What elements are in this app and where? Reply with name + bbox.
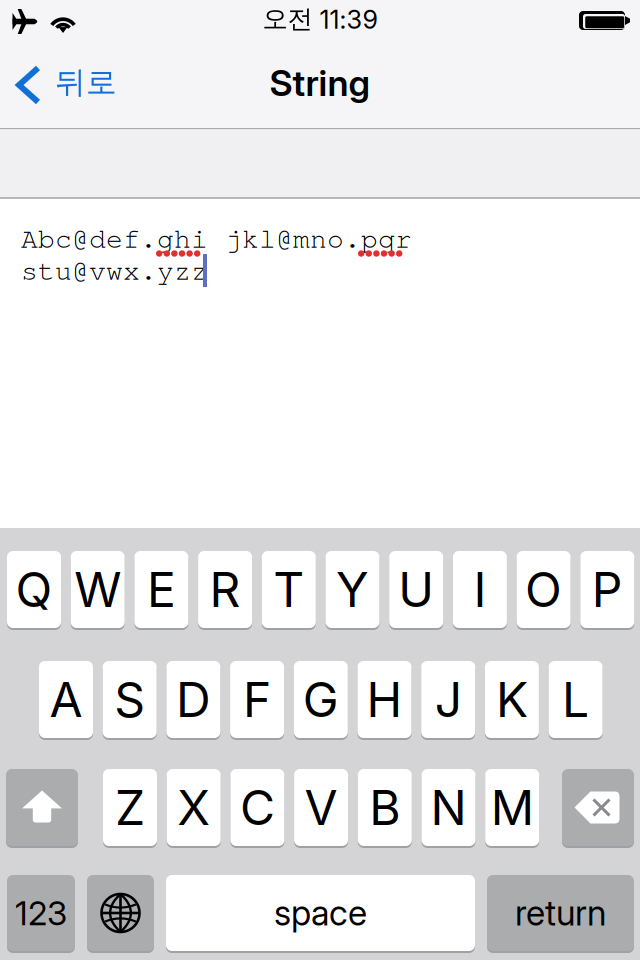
button[interactable]: D: [166, 661, 220, 740]
staticText: A: [49, 670, 82, 729]
button[interactable]: M: [485, 769, 539, 848]
button[interactable]: U: [389, 551, 443, 630]
staticText: G: [303, 670, 339, 729]
staticText: F: [243, 670, 271, 729]
staticText: V: [305, 778, 338, 837]
button[interactable]: [87, 875, 154, 953]
staticText: T: [273, 560, 304, 619]
staticText: B: [369, 778, 400, 837]
staticText: C: [240, 778, 275, 837]
staticText: I: [473, 560, 486, 619]
button[interactable]: [6, 769, 78, 848]
button[interactable]: return: [487, 875, 634, 953]
staticText: space: [274, 892, 367, 934]
button[interactable]: B: [358, 769, 412, 848]
staticText: D: [176, 670, 211, 729]
staticText: Y: [336, 560, 369, 619]
button[interactable]: A: [39, 661, 93, 740]
staticText: P: [592, 560, 623, 619]
staticText: M: [491, 778, 534, 837]
button[interactable]: I: [453, 551, 507, 630]
button[interactable]: Z: [103, 769, 157, 848]
button[interactable]: N: [421, 769, 475, 848]
staticText: S: [114, 670, 145, 729]
staticText: U: [398, 560, 434, 619]
button[interactable]: J: [421, 661, 475, 740]
button[interactable]: Y: [325, 551, 379, 630]
staticText: W: [74, 560, 121, 619]
button[interactable]: 뒤로: [14, 58, 144, 114]
staticText: N: [430, 778, 466, 837]
staticText: Z: [115, 778, 145, 837]
staticText: return: [515, 892, 606, 934]
staticText: L: [562, 670, 589, 729]
staticText: R: [210, 560, 241, 619]
button[interactable]: space: [166, 875, 475, 953]
button[interactable]: C: [230, 769, 284, 848]
button[interactable]: E: [134, 551, 188, 630]
staticText: H: [366, 670, 402, 729]
staticText: O: [525, 560, 562, 619]
button[interactable]: [562, 769, 634, 848]
button[interactable]: W: [71, 551, 125, 630]
button[interactable]: G: [294, 661, 348, 740]
button[interactable]: R: [198, 551, 252, 630]
button[interactable]: X: [167, 769, 221, 848]
staticText: Abc@def.ghi jkl@mno.pqr: [21, 221, 412, 255]
button[interactable]: O: [517, 551, 571, 630]
staticText: stu@vwx.yzz: [21, 253, 208, 287]
staticText: K: [496, 670, 528, 729]
button[interactable]: F: [230, 661, 284, 740]
button[interactable]: Q: [7, 551, 61, 630]
button[interactable]: 123: [7, 875, 75, 953]
button[interactable]: T: [262, 551, 316, 630]
button[interactable]: L: [549, 661, 603, 740]
staticText: X: [177, 778, 210, 837]
staticText: E: [147, 560, 176, 619]
staticText: Q: [15, 560, 52, 619]
button[interactable]: V: [294, 769, 348, 848]
staticText: 뒤로: [55, 63, 117, 102]
staticText: 123: [15, 893, 67, 933]
button[interactable]: K: [485, 661, 539, 740]
staticText: 오전 11:39: [262, 3, 377, 35]
button[interactable]: H: [357, 661, 411, 740]
staticText: String: [269, 61, 370, 105]
button[interactable]: P: [580, 551, 634, 630]
button[interactable]: S: [103, 661, 157, 740]
staticText: J: [435, 670, 462, 729]
